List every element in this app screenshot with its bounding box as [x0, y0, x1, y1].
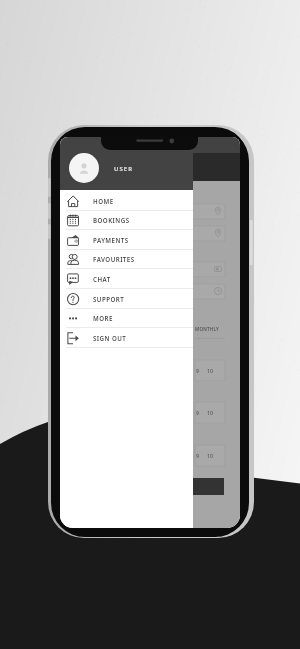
button[interactable]: HOME: [60, 191, 193, 211]
staticText: 9: [196, 452, 199, 459]
staticText: 10: [207, 452, 213, 459]
button[interactable]: 9: [195, 402, 225, 423]
staticText: SUPPORT: [93, 295, 125, 303]
staticText: MORE: [93, 314, 113, 322]
button[interactable]: PAYMENTS: [60, 230, 193, 250]
staticText: 9: [196, 409, 199, 416]
button[interactable]: USER: [60, 137, 193, 190]
staticText: 9: [196, 367, 199, 374]
button[interactable]: 9: [195, 445, 225, 466]
button[interactable]: SIGN OUT: [60, 328, 193, 348]
button[interactable]: BOOKINGS: [60, 210, 193, 230]
staticText: MONTHLY: [195, 326, 219, 332]
button[interactable]: 9: [195, 360, 225, 381]
button[interactable]: FAVOURITES: [60, 249, 193, 269]
staticText: PAYMENTS: [93, 236, 129, 244]
button[interactable]: MORE: [60, 308, 193, 328]
button[interactable]: CHAT: [60, 269, 193, 289]
staticText: HOME: [93, 197, 114, 205]
staticText: SIGN OUT: [93, 334, 127, 342]
staticText: CHAT: [93, 275, 111, 283]
staticText: 10: [207, 367, 213, 374]
button[interactable]: SUPPORT: [60, 289, 193, 309]
staticText: USER: [114, 165, 134, 173]
staticText: FAVOURITES: [93, 255, 135, 263]
staticText: BOOKINGS: [93, 216, 130, 224]
button[interactable]: Confirm booking: [192, 478, 224, 495]
staticText: 10: [207, 409, 213, 416]
